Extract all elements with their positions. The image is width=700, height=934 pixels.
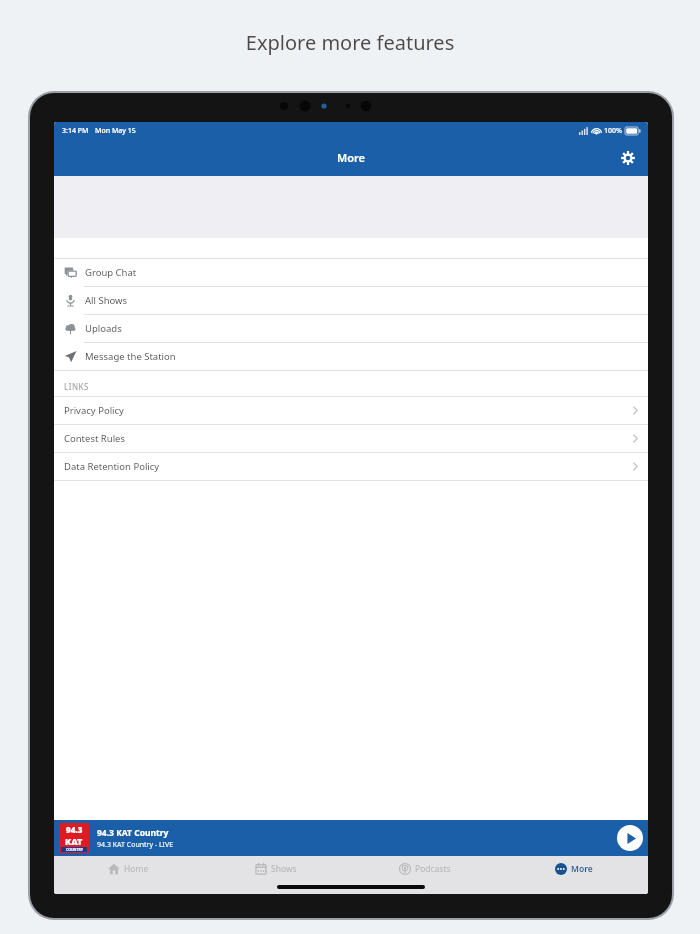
staticText: COUNTRY: [66, 847, 83, 852]
staticText: Home: [124, 863, 149, 875]
staticText: Podcasts: [415, 863, 451, 875]
staticText: More: [337, 150, 365, 165]
button[interactable]: 94.3: [54, 820, 648, 856]
staticText: KAT: [65, 835, 83, 847]
button[interactable]: Data Retention Policy: [54, 453, 648, 480]
button[interactable]: Shows: [202, 856, 350, 882]
staticText: 94.3: [66, 824, 83, 835]
button[interactable]: Home: [54, 856, 202, 882]
button[interactable]: Message the Station: [54, 343, 648, 370]
staticText: Group Chat: [85, 266, 137, 279]
staticText: 100%: [604, 126, 622, 136]
button[interactable]: All Shows: [54, 287, 648, 314]
staticText: 3:14 PM: [62, 126, 89, 136]
staticText: Mon May 15: [95, 126, 136, 136]
staticText: Contest Rules: [64, 432, 125, 445]
button[interactable]: Play: [617, 825, 643, 851]
staticText: More: [571, 863, 593, 875]
button[interactable]: Privacy Policy: [54, 397, 648, 424]
staticText: Shows: [271, 863, 297, 875]
staticText: 94.3 KAT Country - LIVE: [97, 840, 174, 850]
button[interactable]: Uploads: [54, 315, 648, 342]
button[interactable]: Podcasts: [350, 856, 499, 882]
staticText: Uploads: [85, 322, 122, 335]
button[interactable]: Contest Rules: [54, 425, 648, 452]
staticText: 94.3 KAT Country: [97, 827, 169, 839]
staticText: Message the Station: [85, 350, 176, 363]
button[interactable]: Settings: [616, 146, 640, 170]
button[interactable]: Group Chat: [54, 259, 648, 286]
staticText: LINKS: [64, 381, 89, 392]
staticText: Explore more features: [0, 29, 700, 56]
button[interactable]: More: [499, 856, 648, 882]
staticText: Privacy Policy: [64, 404, 124, 417]
staticText: All Shows: [85, 294, 128, 307]
staticText: Data Retention Policy: [64, 460, 160, 473]
